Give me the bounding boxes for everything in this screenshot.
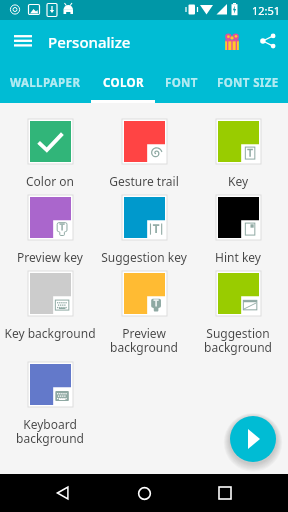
staticText: WALLPAPER: [10, 75, 81, 91]
staticText: Keyboard background: [3, 416, 97, 447]
staticText: Color on: [3, 173, 97, 189]
button[interactable]: Recents: [207, 475, 243, 511]
button[interactable]: Gift: [218, 27, 246, 55]
button[interactable]: Key background: [3, 271, 97, 347]
staticText: COLOR: [103, 75, 144, 91]
staticText: Key background: [3, 325, 97, 341]
staticText: FONT: [165, 75, 198, 91]
button[interactable]: Preview key: [3, 195, 97, 271]
staticText: Preview key: [3, 249, 97, 265]
staticText: Suggestion key: [97, 249, 191, 265]
button[interactable]: Menu: [10, 28, 36, 54]
staticText: Suggestion background: [191, 325, 285, 356]
button[interactable]: Back: [45, 475, 81, 511]
button[interactable]: Color on: [3, 119, 97, 195]
staticText: Gesture trail: [97, 173, 191, 189]
staticText: FONT SIZE: [217, 75, 279, 91]
staticText: Key: [191, 173, 285, 189]
button[interactable]: Gesture trail: [97, 119, 191, 195]
button[interactable]: FONT SIZE: [208, 62, 288, 103]
button[interactable]: WALLPAPER: [0, 62, 91, 103]
button[interactable]: Share: [254, 27, 282, 55]
staticText: Preview background: [97, 325, 191, 356]
staticText: Personalize: [48, 32, 131, 52]
button[interactable]: Play: [230, 416, 276, 462]
staticText: 12:51: [252, 3, 281, 18]
button[interactable]: COLOR: [91, 62, 155, 103]
button[interactable]: Keyboard background: [3, 362, 97, 453]
button[interactable]: Suggestion key: [97, 195, 191, 271]
button[interactable]: Hint key: [191, 195, 285, 271]
staticText: Hint key: [191, 249, 285, 265]
button[interactable]: Key: [191, 119, 285, 195]
button[interactable]: Preview background: [97, 271, 191, 362]
button[interactable]: Suggestion background: [191, 271, 285, 362]
button[interactable]: FONT: [155, 62, 208, 103]
button[interactable]: Home: [126, 475, 162, 511]
